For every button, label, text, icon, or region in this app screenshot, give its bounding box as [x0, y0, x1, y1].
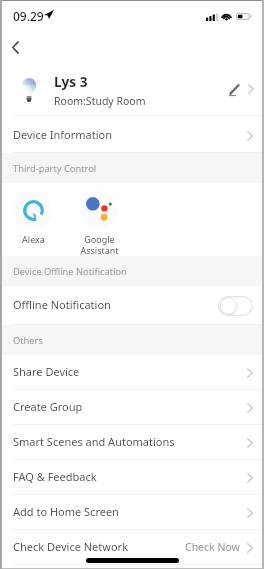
button[interactable]: Create Group — [0, 390, 264, 425]
staticText: Alexa — [22, 233, 45, 245]
staticText: Others — [13, 334, 43, 347]
button[interactable]: FAQ & Feedback — [0, 460, 264, 495]
staticText: Offline Notification — [13, 297, 218, 312]
staticText: Lys 3 — [54, 72, 88, 91]
staticText: Create Group — [13, 399, 247, 414]
staticText: Google Assistant — [80, 233, 119, 256]
staticText: Add to Home Screen — [13, 504, 247, 519]
button[interactable]: Lys 3 — [0, 62, 264, 115]
button[interactable]: Offline Notification switch — [218, 296, 253, 316]
button[interactable]: Alexa — [0, 183, 66, 245]
button[interactable]: Back — [1, 33, 29, 61]
button[interactable]: Add to Home Screen — [0, 495, 264, 530]
staticText: Check Now — [185, 540, 240, 554]
button[interactable]: Smart Scenes and Automations — [0, 425, 264, 460]
staticText: Room:Study Room — [54, 94, 146, 108]
staticText: Device Offline Notification — [13, 265, 127, 278]
button[interactable]: Check Device Network — [0, 530, 264, 565]
staticText: Share Device — [13, 364, 247, 379]
staticText: Third-party Control — [13, 162, 97, 175]
staticText: Smart Scenes and Automations — [13, 434, 247, 449]
staticText: FAQ & Feedback — [13, 469, 247, 484]
staticText: Device Information — [13, 127, 247, 142]
staticText: Check Device Network — [13, 539, 185, 554]
button[interactable]: Google Assistant — [66, 183, 132, 256]
button[interactable]: Edit name — [222, 77, 246, 101]
button[interactable]: Share Device — [0, 355, 264, 390]
button[interactable]: Device Information — [0, 116, 264, 153]
staticText: 09.29 — [13, 8, 44, 24]
